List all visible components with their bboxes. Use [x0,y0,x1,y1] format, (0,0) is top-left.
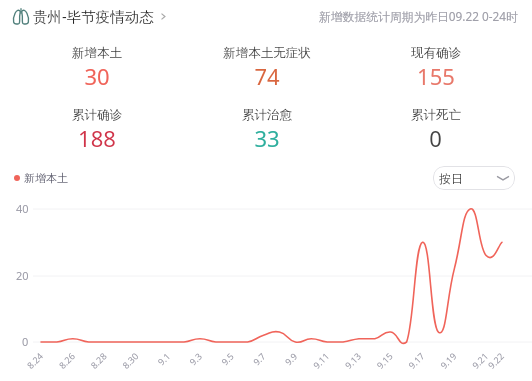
staticText: 新增本土 [24,171,68,185]
button[interactable]: 累计治愈 [182,107,351,153]
staticText: 155 [417,61,455,91]
button[interactable]: 累计确诊 [12,107,182,153]
staticText: 累计确诊 [72,107,122,123]
staticText: 贵州-毕节疫情动态 [33,6,154,26]
staticText: 0 [429,123,442,153]
button[interactable]: 新增本土 [12,45,182,91]
staticText: 188 [78,123,116,153]
staticText: 现有确诊 [411,45,461,61]
staticText: 累计治愈 [242,107,292,123]
button[interactable]: 新增本土 [14,171,68,185]
button[interactable]: 累计死亡 [351,107,520,153]
staticText: 按日 [439,171,463,186]
staticText: 累计死亡 [411,107,461,123]
staticText: 30 [84,61,110,91]
button[interactable]: 现有确诊 [351,45,520,91]
staticText: 新增本土 [72,45,122,61]
staticText: 新增本土无症状 [223,45,311,61]
staticText: 新增数据统计周期为昨日09.22 0-24时 [319,8,518,24]
staticText: 33 [254,123,280,153]
button[interactable]: 贵州-毕节疫情动态 [13,6,168,26]
button[interactable]: 新增本土无症状 [182,45,351,91]
staticText: 74 [254,61,280,91]
button[interactable]: 按日 [433,166,515,190]
